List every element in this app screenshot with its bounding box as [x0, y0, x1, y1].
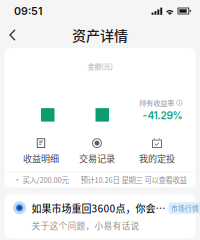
button[interactable]: 返回: [0, 22, 26, 48]
staticText: 09:51: [14, 4, 43, 17]
button[interactable]: 如果市场重回3600点，你会…: [4, 194, 195, 238]
staticText: 市场行情: [171, 203, 199, 213]
staticText: 关于这个问题，小易有话说: [31, 219, 139, 232]
staticText: 如果市场重回3600点，你会…: [31, 201, 165, 215]
staticText: 金额(元): [87, 61, 112, 71]
button[interactable]: 收益明细: [15, 138, 67, 165]
staticText: 资产详情: [72, 25, 128, 45]
staticText: 我的定投: [139, 152, 175, 165]
staticText: 交易记录: [79, 152, 115, 165]
staticText: -41.29%: [142, 109, 182, 122]
staticText: 预计10.26日 星期三 可以查看收益: [80, 174, 186, 185]
button[interactable]: 交易记录: [71, 138, 123, 165]
staticText: • 买入/200.00元: [13, 174, 68, 185]
button[interactable]: 我的定投: [131, 138, 183, 165]
staticText: 持有收益率: [139, 97, 174, 108]
staticText: 收益明细: [23, 152, 59, 165]
